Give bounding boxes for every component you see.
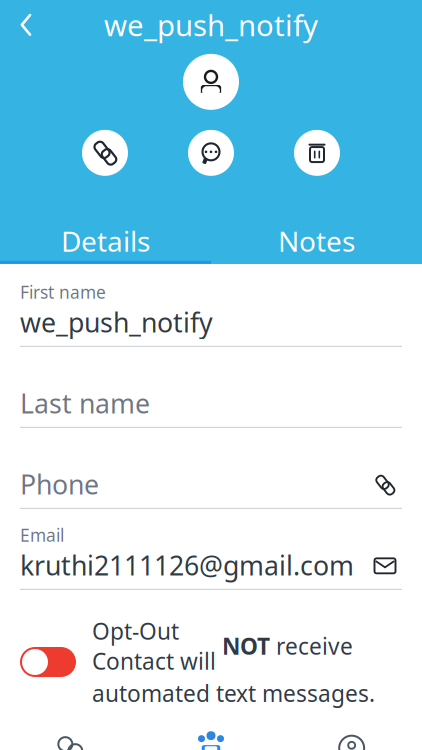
button[interactable]: Message bbox=[188, 130, 234, 176]
button[interactable]: Details bbox=[0, 221, 211, 261]
button[interactable]: Notes bbox=[211, 221, 422, 261]
staticText: Phone bbox=[20, 466, 99, 502]
staticText: automated text messages. bbox=[92, 678, 375, 708]
staticText: Notes bbox=[278, 222, 355, 259]
button[interactable]: Email bbox=[368, 549, 402, 583]
staticText: we_push_notify bbox=[20, 304, 213, 340]
button[interactable]: Call bbox=[82, 130, 128, 176]
button[interactable]: Contacts bbox=[141, 722, 281, 750]
staticText: Details bbox=[61, 222, 150, 259]
button[interactable]: Delete bbox=[294, 130, 340, 176]
staticText: Last name bbox=[20, 385, 150, 421]
staticText: we_push_notify bbox=[104, 5, 318, 44]
button[interactable]: Call bbox=[368, 468, 402, 502]
button[interactable]: Messages bbox=[0, 722, 141, 750]
staticText: Opt-Out Contact will bbox=[92, 616, 222, 676]
button[interactable]: Back bbox=[4, 3, 48, 47]
staticText: NOT bbox=[222, 631, 270, 661]
staticText: receive bbox=[270, 631, 353, 661]
button[interactable]: Profile bbox=[281, 722, 422, 750]
staticText: kruthi2111126@gmail.com bbox=[20, 547, 354, 583]
staticText: First name bbox=[20, 280, 106, 303]
staticText: Email bbox=[20, 523, 64, 546]
button[interactable]: Opt-Out Contact will bbox=[0, 616, 422, 722]
button[interactable]: Contact avatar bbox=[183, 54, 239, 110]
